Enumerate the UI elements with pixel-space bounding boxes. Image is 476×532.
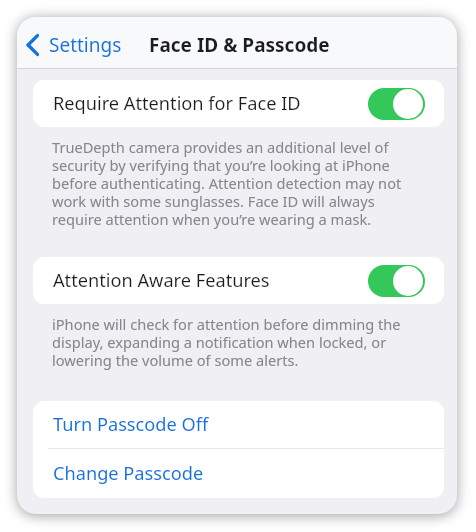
button[interactable]: Toggle on [368, 265, 425, 297]
staticText: Settings [49, 32, 122, 58]
button[interactable]: Require Attention for Face ID [33, 80, 444, 127]
staticText: TrueDepth camera provides an additional … [52, 137, 420, 230]
button[interactable]: Attention Aware Features [33, 257, 444, 304]
staticText: Attention Aware Features [53, 268, 270, 293]
button[interactable]: Turn Passcode Off [33, 401, 444, 448]
staticText: Turn Passcode Off [53, 412, 209, 437]
staticText: Face ID & Passcode [149, 32, 330, 58]
button[interactable]: Change Passcode [33, 449, 444, 498]
staticText: Require Attention for Face ID [53, 91, 301, 116]
button[interactable]: Back to Settings [23, 28, 125, 62]
staticText: Change Passcode [53, 461, 204, 486]
button[interactable]: Toggle on [368, 88, 425, 120]
staticText: iPhone will check for attention before d… [52, 314, 420, 371]
